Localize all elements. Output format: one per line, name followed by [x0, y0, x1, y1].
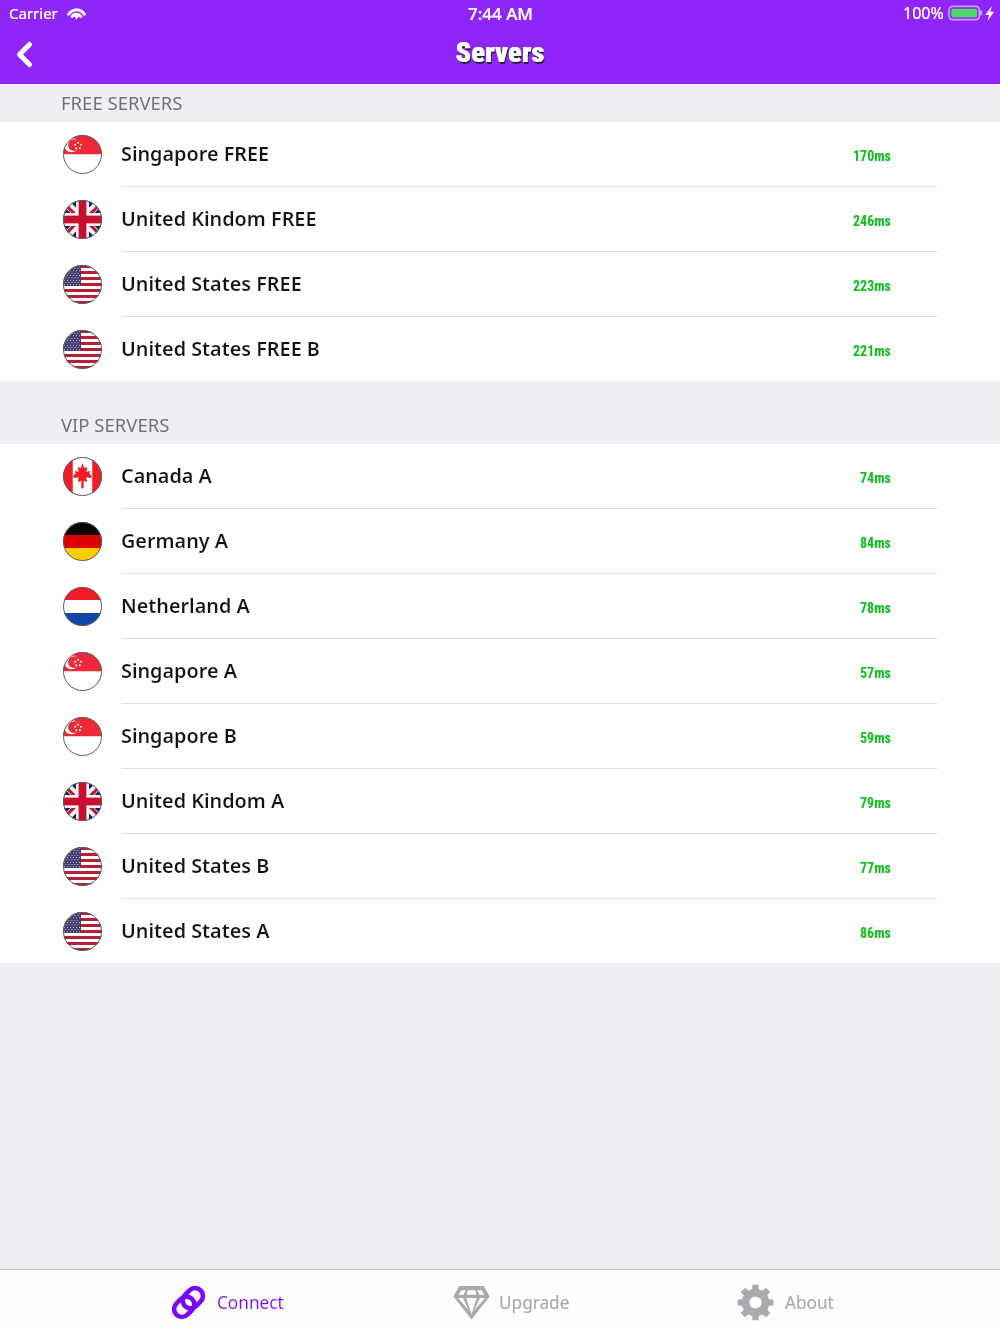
- button[interactable]: Singapore A: [0, 639, 1000, 703]
- staticText: United States FREE B: [121, 335, 320, 362]
- button[interactable]: About: [737, 1270, 834, 1334]
- staticText: About: [785, 1291, 834, 1314]
- staticText: United Kindom FREE: [121, 205, 317, 232]
- staticText: 223ms: [853, 278, 891, 294]
- staticText: 100%: [903, 2, 944, 24]
- staticText: 57ms: [860, 665, 891, 681]
- staticText: 79ms: [860, 795, 891, 811]
- staticText: 59ms: [860, 730, 891, 746]
- staticText: 84ms: [860, 535, 891, 551]
- staticText: FREE SERVERS: [61, 90, 183, 115]
- staticText: Singapore FREE: [121, 140, 270, 167]
- button[interactable]: United States A: [0, 899, 1000, 963]
- staticText: Canada A: [121, 462, 212, 489]
- staticText: United States A: [121, 917, 270, 944]
- button[interactable]: Back: [0, 26, 48, 82]
- button[interactable]: Singapore B: [0, 704, 1000, 768]
- staticText: Singapore B: [121, 722, 237, 749]
- staticText: 78ms: [860, 600, 891, 616]
- staticText: Upgrade: [499, 1291, 570, 1314]
- staticText: 77ms: [860, 860, 891, 876]
- staticText: 221ms: [853, 343, 891, 359]
- staticText: 7:44 AM: [468, 2, 533, 25]
- button[interactable]: United Kindom FREE: [0, 187, 1000, 251]
- staticText: United Kindom A: [121, 787, 285, 814]
- staticText: Servers: [1, 38, 1000, 71]
- staticText: 74ms: [860, 470, 891, 486]
- button[interactable]: United Kindom A: [0, 769, 1000, 833]
- staticText: Singapore A: [121, 657, 237, 684]
- button[interactable]: United States B: [0, 834, 1000, 898]
- staticText: Germany A: [121, 527, 229, 554]
- staticText: United States FREE: [121, 270, 302, 297]
- staticText: Connect: [217, 1291, 284, 1314]
- staticText: 170ms: [853, 148, 891, 164]
- button[interactable]: Connect: [170, 1270, 284, 1334]
- button[interactable]: Upgrade: [452, 1270, 570, 1334]
- staticText: United States B: [121, 852, 270, 879]
- button[interactable]: Singapore FREE: [0, 122, 1000, 186]
- staticText: 86ms: [860, 925, 891, 941]
- button[interactable]: United States FREE B: [0, 317, 1000, 381]
- button[interactable]: Netherland A: [0, 574, 1000, 638]
- staticText: Netherland A: [121, 592, 250, 619]
- staticText: Carrier: [9, 3, 58, 23]
- staticText: Servers: [0, 36, 1000, 69]
- button[interactable]: United States FREE: [0, 252, 1000, 316]
- button[interactable]: Germany A: [0, 509, 1000, 573]
- button[interactable]: Canada A: [0, 444, 1000, 508]
- staticText: 246ms: [853, 213, 891, 229]
- staticText: VIP SERVERS: [61, 412, 170, 437]
